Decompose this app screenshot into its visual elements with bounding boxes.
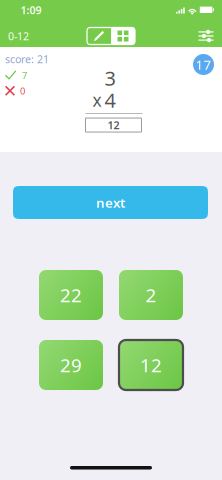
staticText: 22 xyxy=(60,283,82,307)
button[interactable]: Write xyxy=(87,27,111,44)
staticText: 2 xyxy=(145,283,156,307)
button[interactable]: next xyxy=(13,186,208,219)
staticText: x xyxy=(92,88,101,111)
staticText: 3 xyxy=(104,65,115,91)
staticText: 0 xyxy=(20,85,25,97)
button[interactable]: 0-12 xyxy=(0,25,46,47)
staticText: 12 xyxy=(140,353,162,377)
button[interactable]: Grid xyxy=(111,27,135,44)
button[interactable]: 12 xyxy=(119,340,183,390)
staticText: 1:09 xyxy=(20,3,41,17)
staticText: 0-12 xyxy=(8,29,29,43)
staticText: 4 xyxy=(104,87,115,113)
button[interactable]: 29 xyxy=(39,340,103,390)
button[interactable]: 2 xyxy=(119,270,183,320)
staticText: 17 xyxy=(195,56,211,73)
staticText: next xyxy=(96,194,125,211)
staticText: 12 xyxy=(107,118,119,132)
button[interactable]: Settings xyxy=(191,25,221,47)
staticText: score: 21 xyxy=(5,52,49,66)
staticText: 29 xyxy=(60,353,82,377)
button[interactable]: 22 xyxy=(39,270,103,320)
staticText: 7 xyxy=(22,69,27,82)
